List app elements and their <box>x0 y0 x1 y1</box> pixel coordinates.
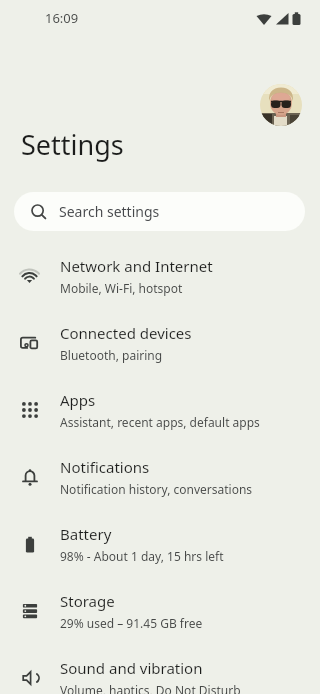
staticText: Notifications <box>60 457 150 477</box>
staticText: Battery <box>60 524 112 544</box>
staticText: Settings <box>21 126 124 163</box>
button[interactable]: Storage <box>0 577 320 644</box>
staticText: Connected devices <box>60 323 192 343</box>
button[interactable]: Apps <box>0 376 320 443</box>
button[interactable]: Network and Internet <box>0 242 320 309</box>
button[interactable]: Battery <box>0 510 320 577</box>
staticText: Assistant, recent apps, default apps <box>60 414 260 430</box>
button[interactable]: Search settings <box>14 192 305 231</box>
staticText: Network and Internet <box>60 256 213 276</box>
button[interactable]: Sound and vibration <box>0 644 320 694</box>
button[interactable] <box>260 84 302 126</box>
staticText: Apps <box>60 390 96 410</box>
staticText: Search settings <box>59 202 160 221</box>
staticText: Sound and vibration <box>60 658 203 678</box>
button[interactable]: Notifications <box>0 443 320 510</box>
staticText: Volume, haptics, Do Not Disturb <box>60 682 241 694</box>
staticText: Bluetooth, pairing <box>60 347 163 363</box>
staticText: 16:09 <box>45 9 79 27</box>
staticText: Storage <box>60 591 115 611</box>
staticText: 98% - About 1 day, 15 hrs left <box>60 548 224 564</box>
staticText: 29% used – 91.45 GB free <box>60 615 203 631</box>
staticText: Notification history, conversations <box>60 481 253 497</box>
staticText: Mobile, Wi-Fi, hotspot <box>60 280 183 296</box>
button[interactable]: Connected devices <box>0 309 320 376</box>
